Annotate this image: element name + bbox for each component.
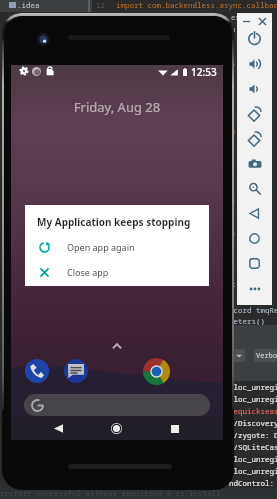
button[interactable]: Phone	[25, 359, 49, 383]
button[interactable]: Home	[105, 417, 127, 440]
staticText: t	[231, 194, 236, 211]
button[interactable]: Minimize	[242, 17, 251, 26]
button[interactable]: Chrome	[143, 358, 170, 385]
other: More	[248, 282, 262, 296]
staticText: ndControl:	[229, 478, 274, 490]
button[interactable]: Take screenshot	[237, 151, 272, 176]
staticText: 12:53	[191, 65, 217, 79]
button[interactable]: Open app again	[25, 234, 209, 260]
button[interactable]: Log level	[233, 349, 245, 362]
other: Volume down	[248, 82, 262, 96]
button[interactable]: Close app	[25, 259, 209, 285]
staticText: lequicksear	[229, 406, 277, 418]
button[interactable]: Back	[47, 417, 69, 440]
staticText: lloc_unregi	[229, 466, 277, 478]
button[interactable]: Overview	[237, 251, 272, 276]
staticText: Close app	[67, 266, 109, 278]
staticText: lloc_unregi	[229, 454, 277, 466]
button[interactable]: Home	[237, 226, 272, 251]
button[interactable]: Search	[24, 394, 210, 416]
button[interactable]: Volume up	[237, 51, 272, 76]
staticText: .idea	[17, 0, 40, 10]
button[interactable]: Recent apps	[164, 417, 186, 440]
staticText: 12	[96, 0, 105, 10]
button[interactable]: More	[237, 276, 272, 301]
button[interactable]: Messages	[64, 359, 88, 383]
staticText: ecord tmqRe	[229, 305, 277, 316]
staticText: lloc_unregi	[229, 394, 277, 406]
other: Power	[247, 31, 262, 46]
button[interactable]: Rotate left	[237, 101, 272, 126]
other: Home	[249, 233, 260, 244]
other: Take screenshot	[248, 157, 262, 171]
staticText: Open app again	[67, 241, 135, 253]
staticText: e	[231, 126, 236, 143]
button[interactable]: Back	[237, 201, 272, 226]
button[interactable]: Settings	[19, 66, 29, 76]
staticText: restart successful without requiring a r…	[0, 488, 225, 498]
staticText: Friday, Aug 28	[11, 98, 223, 116]
staticText: lloc_unregi	[229, 382, 277, 394]
staticText: exce	[231, 12, 249, 22]
button[interactable]: Verbos	[254, 349, 277, 362]
staticText: import com.backendless.async.callback	[116, 0, 277, 10]
button[interactable]: Rotate right	[237, 126, 272, 151]
other: Rotate left	[247, 106, 263, 122]
staticText: s	[231, 58, 236, 75]
other: Volume up	[248, 57, 262, 71]
staticText: I/Discovery	[229, 418, 277, 430]
other: Back	[249, 208, 260, 219]
button[interactable]: Zoom	[237, 176, 272, 201]
staticText: h	[231, 24, 236, 41]
other: Rotate right	[247, 131, 263, 147]
staticText: meters()	[229, 316, 265, 327]
staticText: Verbos	[256, 351, 277, 362]
staticText: s	[231, 228, 236, 245]
button[interactable]: Close	[258, 17, 267, 26]
staticText: My Application keeps stopping	[37, 215, 191, 229]
staticText: I/zygote: D	[229, 430, 277, 442]
staticText: c	[231, 279, 236, 296]
other: Zoom	[248, 182, 261, 195]
staticText: I/SQLiteCas	[229, 442, 277, 454]
button[interactable]: Power	[237, 26, 272, 51]
other: Overview	[249, 258, 260, 269]
button[interactable]: Volume down	[237, 76, 272, 101]
